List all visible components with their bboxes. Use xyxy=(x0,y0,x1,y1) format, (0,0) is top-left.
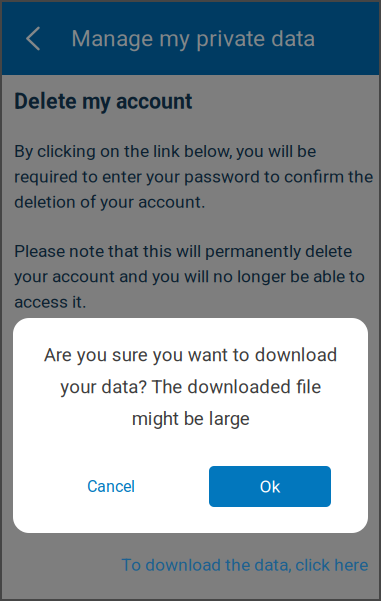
staticText: Delete my account xyxy=(14,89,192,114)
staticText: Please note that this will permanently d… xyxy=(14,241,365,312)
staticText: To download the data, click here xyxy=(121,555,368,575)
staticText: By clicking on the link below, you will … xyxy=(14,141,373,212)
button[interactable]: Ok xyxy=(209,466,331,507)
staticText: Manage my private data xyxy=(71,25,315,52)
staticText: Ok xyxy=(259,476,280,497)
button[interactable]: Cancel xyxy=(66,466,156,507)
button[interactable]: To download the data, click here xyxy=(14,546,368,584)
staticText: Cancel xyxy=(87,477,135,496)
staticText: Are you sure you want to download your d… xyxy=(43,344,337,430)
button[interactable]: Back xyxy=(2,2,71,75)
